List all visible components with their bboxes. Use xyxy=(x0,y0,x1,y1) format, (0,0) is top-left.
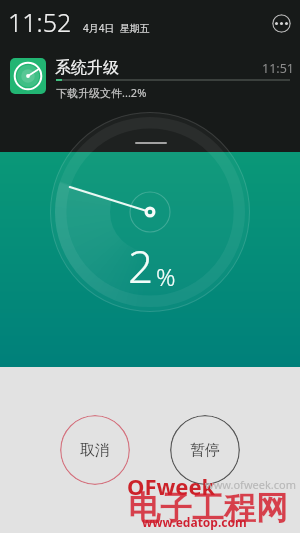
staticText: www.edatop.com xyxy=(142,514,247,530)
button[interactable]: 取消 xyxy=(60,415,130,485)
button[interactable]: System update icon xyxy=(10,58,46,94)
button[interactable]: 暂停 xyxy=(170,415,240,485)
staticText: 电子工程网 xyxy=(128,488,288,528)
staticText: 11:52 xyxy=(8,5,72,39)
staticText: 系统升级 xyxy=(55,58,119,78)
button[interactable]: More options xyxy=(272,14,291,33)
staticText: 取消 xyxy=(80,441,110,460)
staticText: 11:51 xyxy=(262,60,294,77)
staticText: 下载升级文件...2% xyxy=(56,85,147,100)
staticText: www.ofweek.com xyxy=(205,477,296,492)
staticText: 2 xyxy=(128,236,154,296)
staticText: 4月4日 星期五 xyxy=(83,21,150,35)
staticText: % xyxy=(156,260,176,293)
staticText: OFweek xyxy=(127,471,216,501)
staticText: 暂停 xyxy=(190,441,220,460)
